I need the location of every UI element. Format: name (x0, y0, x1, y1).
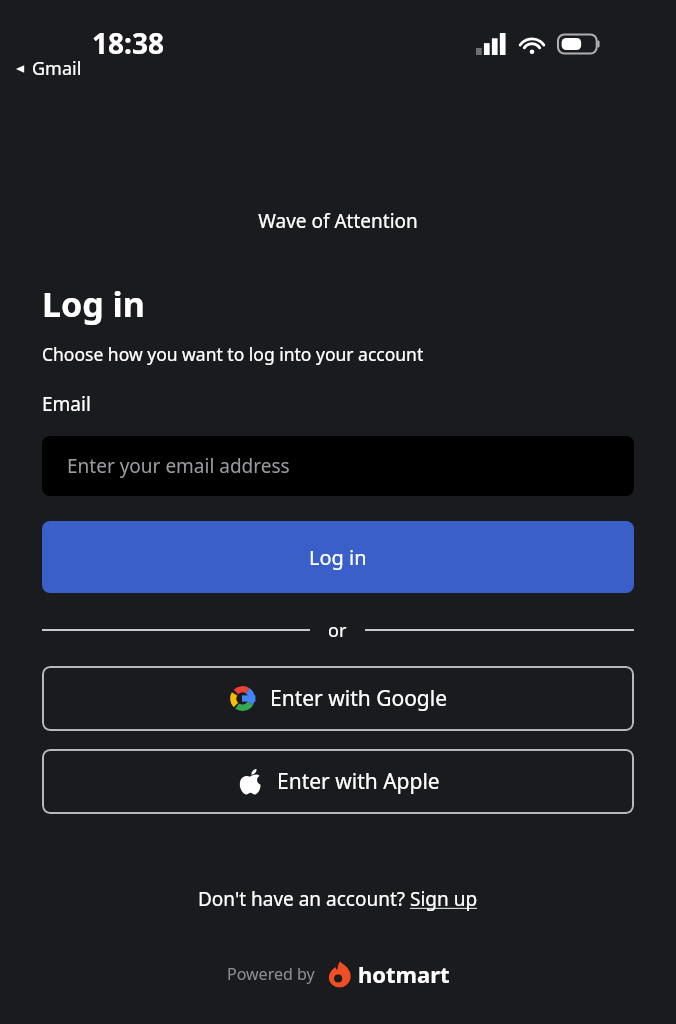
staticText: Powered by (227, 963, 315, 985)
button[interactable]: Enter with Google (42, 666, 634, 731)
staticText: Log in (42, 281, 145, 327)
staticText: Choose how you want to log into your acc… (42, 342, 424, 366)
staticText: Log in (309, 544, 367, 571)
staticText: Gmail (32, 56, 82, 81)
button[interactable]: Sign up (410, 886, 478, 912)
button[interactable]: Enter your email address (42, 436, 634, 496)
button[interactable]: Log in (42, 521, 634, 593)
staticText: Email (42, 391, 91, 417)
staticText: Sign up (410, 886, 478, 912)
staticText: Enter your email address (67, 453, 290, 479)
staticText: Wave of Attention (0, 208, 676, 234)
button[interactable]: Enter with Apple (42, 749, 634, 814)
staticText: Enter with Google (270, 684, 448, 713)
staticText: Don't have an account? (198, 886, 410, 912)
staticText: Enter with Apple (277, 767, 440, 796)
staticText: hotmart (358, 959, 450, 989)
staticText: 18:38 (92, 24, 164, 62)
staticText: or (328, 618, 347, 643)
